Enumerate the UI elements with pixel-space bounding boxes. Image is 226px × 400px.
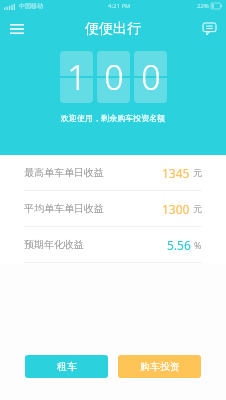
staticText: 最高单车单日收益 bbox=[24, 166, 104, 179]
staticText: 0 bbox=[141, 54, 161, 100]
button[interactable]: 最高单车单日收益 bbox=[0, 155, 226, 190]
button[interactable]: Messages bbox=[192, 12, 226, 46]
staticText: 元 bbox=[193, 203, 202, 214]
staticText: 1 bbox=[67, 54, 87, 100]
button[interactable]: 租车 bbox=[25, 355, 108, 378]
staticText: 欢迎使用，剩余购车投资名额 bbox=[0, 113, 226, 123]
staticText: % bbox=[194, 239, 202, 251]
staticText: 平均单车单日收益 bbox=[24, 202, 104, 215]
button[interactable]: Menu bbox=[0, 12, 34, 46]
staticText: 1345 bbox=[162, 165, 190, 181]
staticText: 5.56 bbox=[167, 237, 191, 253]
staticText: 4:21 PM bbox=[108, 2, 131, 10]
staticText: 便便出行 bbox=[85, 20, 141, 38]
staticText: 预期年化收益 bbox=[24, 238, 84, 251]
button[interactable]: 平均单车单日收益 bbox=[0, 191, 226, 226]
staticText: 0 bbox=[104, 54, 124, 100]
staticText: 1300 bbox=[162, 201, 190, 217]
button[interactable]: 购车投资 bbox=[118, 355, 201, 378]
button[interactable]: 预期年化收益 bbox=[0, 227, 226, 262]
staticText: 22% bbox=[197, 2, 209, 10]
staticText: 租车 bbox=[57, 360, 77, 373]
staticText: 购车投资 bbox=[140, 360, 180, 373]
staticText: 中国移动 bbox=[19, 2, 43, 10]
staticText: 元 bbox=[193, 167, 202, 178]
